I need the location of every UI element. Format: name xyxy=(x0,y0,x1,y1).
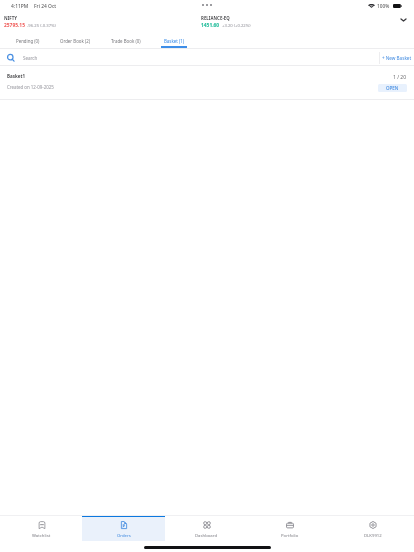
button[interactable]: Search xyxy=(7,54,38,62)
button[interactable]: RELIANCE-EQ xyxy=(201,15,251,29)
staticText: Dashboard xyxy=(195,532,218,538)
button[interactable]: Expand market watch xyxy=(395,12,411,28)
button[interactable]: Portfolio xyxy=(248,515,331,541)
staticText: Pending (0) xyxy=(16,38,40,44)
staticText: Orders xyxy=(117,532,131,538)
staticText: -96.25 (-0.37%) xyxy=(27,23,56,29)
staticText: Basket (1) xyxy=(164,38,185,44)
button[interactable]: Order Book (2) xyxy=(50,32,101,49)
button[interactable]: NIFTY xyxy=(4,15,56,29)
button[interactable]: + New Basket xyxy=(380,55,414,61)
staticText: Watchlist xyxy=(32,532,51,538)
staticText: 4:11PM xyxy=(11,3,29,10)
staticText: 1 / 20 xyxy=(393,74,407,81)
staticText: Fri 24 Oct xyxy=(34,3,57,10)
staticText: NIFTY xyxy=(4,15,17,21)
staticText: Basket1 xyxy=(7,73,25,79)
staticText: + New Basket xyxy=(382,55,412,61)
staticText: +3.20 (+0.22%) xyxy=(222,23,251,29)
staticText: 1451.60 xyxy=(201,22,220,29)
button[interactable]: OPEN xyxy=(378,84,407,92)
staticText: OPEN xyxy=(386,85,399,91)
staticText: Search xyxy=(23,55,38,61)
staticText: Created on 12-09-2025 xyxy=(7,84,54,90)
staticText: DLK9912 xyxy=(364,532,382,538)
staticText: 100% xyxy=(377,3,390,9)
button[interactable]: Orders xyxy=(82,515,165,541)
button[interactable]: DLK9912 xyxy=(331,515,414,541)
button[interactable]: Basket1 xyxy=(0,66,414,100)
staticText: Order Book (2) xyxy=(60,38,91,44)
button[interactable]: Watchlist xyxy=(0,515,82,541)
button[interactable]: Trade Book (0) xyxy=(101,32,151,49)
button[interactable]: Pending (0) xyxy=(6,32,50,49)
staticText: Trade Book (0) xyxy=(111,38,141,44)
staticText: 25795.15 xyxy=(4,22,25,29)
staticText: Portfolio xyxy=(281,532,299,538)
button[interactable]: Dashboard xyxy=(165,515,248,541)
button[interactable]: Basket (1) xyxy=(151,32,197,49)
staticText: RELIANCE-EQ xyxy=(201,15,230,21)
